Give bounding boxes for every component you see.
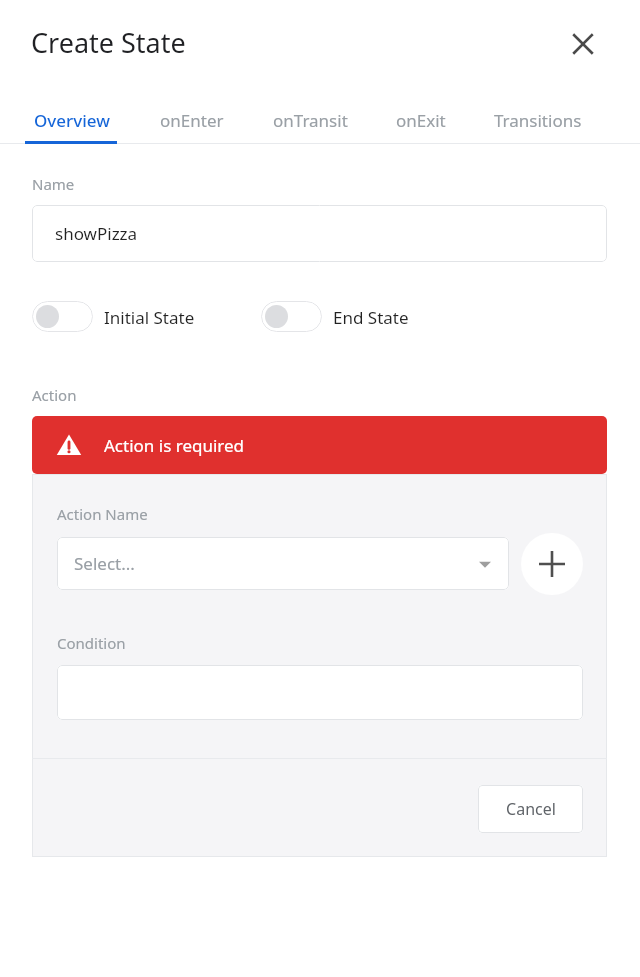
staticText: Action [32,385,77,405]
button[interactable] [57,665,583,720]
button[interactable]: End State [261,301,322,332]
staticText: Transitions [494,109,582,132]
button[interactable]: Overview [25,96,118,144]
staticText: onExit [396,109,446,132]
button[interactable]: Action is required [32,416,607,474]
staticText: onTransit [273,109,348,132]
button[interactable]: Close [557,18,609,70]
staticText: onEnter [160,109,224,132]
staticText: Name [32,174,75,194]
staticText: Cancel [506,798,556,820]
button[interactable]: showPizza [32,205,607,262]
staticText: Create State [31,24,186,61]
button[interactable]: Add action [521,533,583,595]
staticText: Overview [34,109,110,132]
staticText: Select... [74,552,135,575]
staticText: showPizza [55,222,138,245]
button[interactable]: Cancel [478,785,583,833]
button[interactable]: onExit [379,96,463,144]
button[interactable]: onTransit [255,96,365,144]
button[interactable]: onEnter [144,96,240,144]
button[interactable]: Initial State [104,306,195,329]
staticText: Action is required [104,434,245,457]
button[interactable]: End State [333,306,409,329]
button[interactable]: Initial State [32,301,93,332]
staticText: Action Name [57,504,148,524]
button[interactable]: Transitions [474,96,602,144]
button[interactable]: Select... [57,537,509,590]
staticText: Condition [57,633,126,653]
